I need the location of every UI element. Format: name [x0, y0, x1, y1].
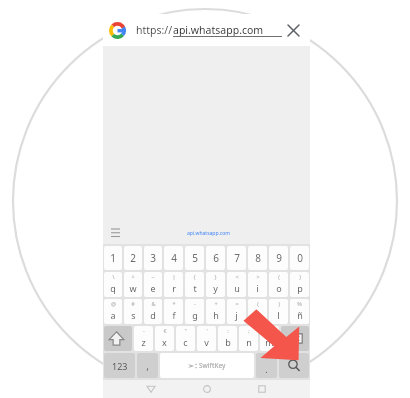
staticText: api.whatsapp.com: [173, 23, 264, 37]
button[interactable]: /: [260, 326, 279, 351]
button[interactable]: ~: [144, 272, 162, 297]
staticText: q: [110, 282, 116, 294]
button[interactable]: €: [155, 326, 174, 351]
staticText: (: [257, 300, 259, 307]
button[interactable]: :: [218, 326, 237, 351]
staticText: https://: [136, 23, 173, 37]
button[interactable]: (: [269, 272, 288, 297]
staticText: b: [225, 336, 231, 348]
button[interactable]: ^: [124, 272, 142, 297]
staticText: k: [255, 309, 260, 321]
staticText: ñ: [297, 309, 303, 321]
staticText: api.whatsapp.com: [187, 230, 230, 237]
button[interactable]: |: [164, 272, 183, 297]
button[interactable]: 9: [269, 246, 288, 270]
button[interactable]: ): [290, 272, 309, 297]
staticText: z: [141, 336, 146, 348]
staticText: a: [110, 309, 116, 321]
button[interactable]: 4: [164, 246, 183, 270]
button[interactable]: &: [144, 299, 162, 324]
button[interactable]: ": [176, 326, 195, 351]
staticText: ): [299, 273, 301, 280]
button[interactable]: 8: [248, 246, 267, 270]
staticText: }: [214, 273, 217, 280]
staticText: :: [227, 327, 229, 334]
button[interactable]: <: [227, 272, 246, 297]
button[interactable]: ): [269, 299, 288, 324]
staticText: i: [256, 282, 259, 294]
button[interactable]: {: [185, 272, 204, 297]
staticText: -: [143, 327, 145, 334]
staticText: n: [246, 336, 252, 348]
staticText: =: [235, 300, 239, 307]
button[interactable]: 6: [206, 246, 225, 270]
staticText: 1: [110, 251, 116, 265]
button[interactable]: =: [227, 299, 246, 324]
button[interactable]: Menu: [108, 226, 122, 240]
staticText: h: [213, 309, 219, 321]
staticText: SwiftKey: [199, 361, 226, 370]
staticText: 8: [255, 251, 261, 265]
button[interactable]: ;: [239, 326, 258, 351]
button[interactable]: Backspace: [281, 326, 309, 351]
staticText: j: [235, 309, 238, 321]
staticText: {: [193, 273, 196, 280]
button[interactable]: ,: [137, 353, 158, 378]
staticText: 123: [112, 360, 128, 372]
staticText: |: [172, 273, 176, 280]
staticText: 6: [213, 251, 219, 265]
button[interactable]: *: [256, 353, 277, 378]
button[interactable]: Close: [282, 19, 304, 41]
button[interactable]: 123: [104, 353, 135, 378]
button[interactable]: 0: [290, 246, 309, 270]
button[interactable]: 7: [227, 246, 246, 270]
button[interactable]: >: [248, 272, 267, 297]
button[interactable]: %: [290, 299, 309, 324]
button[interactable]: (: [248, 299, 267, 324]
staticText: 0: [297, 251, 303, 265]
staticText: <: [235, 273, 239, 280]
button[interactable]: SwiftKey: [160, 353, 254, 378]
staticText: @: [111, 300, 116, 307]
staticText: >: [256, 273, 260, 280]
button[interactable]: https://: [103, 14, 310, 46]
button[interactable]: @: [104, 299, 122, 324]
staticText: .: [265, 363, 268, 375]
staticText: f: [172, 309, 176, 321]
button[interactable]: #: [124, 299, 142, 324]
staticText: ": [184, 327, 187, 334]
button[interactable]: Shift: [104, 326, 132, 351]
button[interactable]: Recents: [254, 381, 270, 397]
button[interactable]: 5: [185, 246, 204, 270]
button[interactable]: Home: [199, 381, 215, 397]
staticText: +: [214, 300, 218, 307]
staticText: %: [297, 300, 302, 307]
staticText: *: [172, 300, 176, 307]
staticText: ': [206, 327, 208, 334]
button[interactable]: Search: [279, 353, 309, 378]
staticText: o: [276, 282, 282, 294]
staticText: 2: [130, 251, 136, 265]
staticText: u: [234, 282, 240, 294]
staticText: 7: [234, 251, 240, 265]
button[interactable]: Back: [143, 381, 159, 397]
button[interactable]: 1: [104, 246, 122, 270]
button[interactable]: *: [164, 299, 183, 324]
button[interactable]: 3: [144, 246, 162, 270]
staticText: x: [162, 336, 167, 348]
button[interactable]: -: [185, 299, 204, 324]
button[interactable]: 2: [124, 246, 142, 270]
button[interactable]: -: [134, 326, 153, 351]
staticText: -: [194, 300, 196, 307]
staticText: €: [163, 327, 167, 334]
staticText: \: [112, 273, 115, 280]
staticText: 3: [150, 251, 156, 265]
staticText: r: [172, 282, 176, 294]
button[interactable]: ': [197, 326, 216, 351]
button[interactable]: +: [206, 299, 225, 324]
button[interactable]: }: [206, 272, 225, 297]
staticText: 9: [276, 251, 282, 265]
button[interactable]: \: [104, 272, 122, 297]
staticText: ;: [248, 327, 250, 334]
